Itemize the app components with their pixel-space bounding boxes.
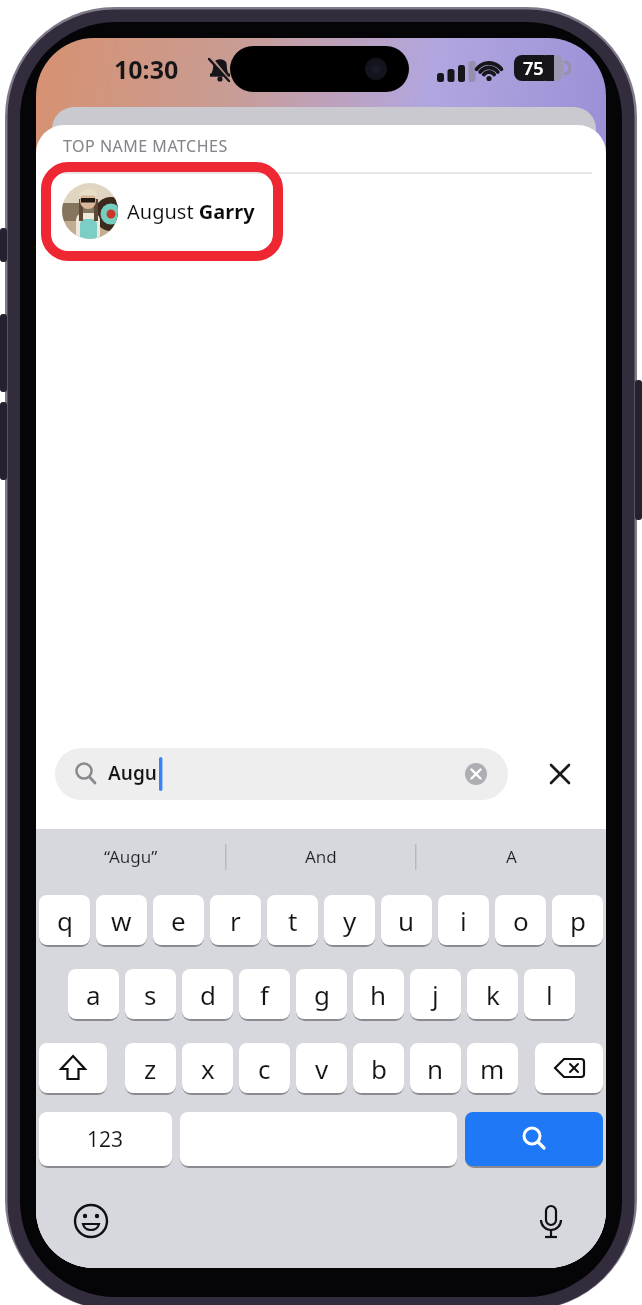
button[interactable]: a xyxy=(68,969,119,1019)
button[interactable]: A xyxy=(441,840,581,872)
staticText: s xyxy=(144,977,157,1012)
button[interactable]: s xyxy=(125,969,176,1019)
button[interactable]: p xyxy=(552,895,603,945)
staticText: y xyxy=(343,903,357,938)
staticText: And xyxy=(305,845,337,868)
button[interactable] xyxy=(535,1043,603,1093)
staticText: v xyxy=(315,1051,329,1086)
button[interactable] xyxy=(72,1202,110,1240)
staticText: p xyxy=(570,903,586,938)
staticText: Augu xyxy=(108,760,157,786)
staticText: j xyxy=(432,977,439,1012)
button[interactable]: t xyxy=(267,895,318,945)
button[interactable]: v xyxy=(296,1043,347,1093)
button[interactable]: m xyxy=(467,1043,518,1093)
staticText: 10:30 xyxy=(114,52,179,86)
button[interactable]: l xyxy=(524,969,575,1019)
button[interactable]: n xyxy=(410,1043,461,1093)
staticText: a xyxy=(86,977,101,1012)
button[interactable]: x xyxy=(182,1043,233,1093)
button[interactable]: d xyxy=(182,969,233,1019)
staticText: o xyxy=(513,903,529,938)
button[interactable]: z xyxy=(125,1043,176,1093)
button[interactable]: f xyxy=(239,969,290,1019)
button[interactable]: w xyxy=(96,895,147,945)
button[interactable]: 123 xyxy=(39,1112,172,1166)
button[interactable]: k xyxy=(467,969,518,1019)
button[interactable]: “Augu” xyxy=(61,840,201,872)
button[interactable]: i xyxy=(438,895,489,945)
staticText: 75 xyxy=(523,56,544,81)
staticText: r xyxy=(230,903,241,938)
button[interactable] xyxy=(180,1112,457,1166)
staticText: c xyxy=(258,1051,271,1086)
staticText: 123 xyxy=(87,1125,124,1154)
staticText: i xyxy=(460,903,467,938)
button[interactable] xyxy=(533,747,587,801)
button[interactable] xyxy=(39,1043,107,1093)
button[interactable]: August Garry xyxy=(52,173,272,249)
button[interactable]: u xyxy=(381,895,432,945)
staticText: b xyxy=(371,1051,387,1086)
staticText: q xyxy=(57,903,73,938)
button[interactable]: o xyxy=(495,895,546,945)
button[interactable] xyxy=(528,1202,566,1240)
staticText: m xyxy=(480,1051,505,1086)
button[interactable]: And xyxy=(251,840,391,872)
staticText: August Garry xyxy=(127,198,255,225)
staticText: n xyxy=(427,1051,444,1086)
staticText: “Augu” xyxy=(104,845,158,868)
staticText: l xyxy=(546,977,553,1012)
button[interactable]: r xyxy=(210,895,261,945)
staticText: TOP NAME MATCHES xyxy=(63,135,228,157)
staticText: u xyxy=(398,903,415,938)
staticText: d xyxy=(200,977,216,1012)
button[interactable]: b xyxy=(353,1043,404,1093)
staticText: g xyxy=(314,977,330,1012)
button[interactable]: y xyxy=(324,895,375,945)
staticText: w xyxy=(111,903,132,938)
button[interactable]: e xyxy=(153,895,204,945)
staticText: f xyxy=(260,977,269,1012)
button[interactable] xyxy=(465,1112,603,1166)
button[interactable] xyxy=(55,748,508,800)
staticText: A xyxy=(506,845,517,868)
button[interactable]: g xyxy=(296,969,347,1019)
staticText: e xyxy=(171,903,186,938)
staticText: k xyxy=(486,977,500,1012)
staticText: h xyxy=(370,977,387,1012)
button[interactable]: j xyxy=(410,969,461,1019)
staticText: z xyxy=(144,1051,157,1086)
button[interactable]: q xyxy=(39,895,90,945)
button[interactable]: h xyxy=(353,969,404,1019)
button[interactable]: c xyxy=(239,1043,290,1093)
staticText: x xyxy=(201,1051,215,1086)
staticText: t xyxy=(288,903,298,938)
